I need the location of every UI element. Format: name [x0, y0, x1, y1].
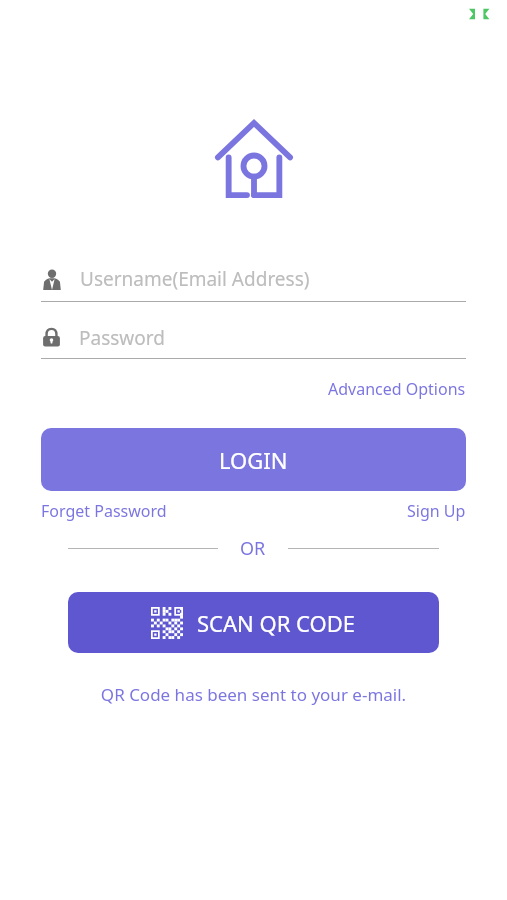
- button[interactable]: Forget Password: [41, 500, 167, 522]
- button[interactable]: Sign Up: [407, 500, 466, 522]
- staticText: Forget Password: [41, 500, 167, 522]
- staticText: LOGIN: [219, 445, 288, 475]
- staticText: Password: [79, 325, 165, 351]
- button[interactable]: Advanced Options: [320, 359, 466, 406]
- staticText: Sign Up: [407, 500, 466, 522]
- button[interactable]: LOGIN: [41, 428, 466, 491]
- button[interactable]: SCAN QR CODE: [68, 592, 439, 653]
- staticText: QR Code has been sent to your e-mail.: [0, 683, 507, 706]
- button[interactable]: Password: [41, 317, 466, 358]
- staticText: SCAN QR CODE: [197, 608, 356, 638]
- staticText: Advanced Options: [328, 378, 466, 400]
- other: Data transfer: [466, 3, 496, 25]
- staticText: OR: [240, 536, 266, 561]
- staticText: Username(Email Address): [80, 266, 310, 292]
- button[interactable]: Username(Email Address): [41, 256, 466, 301]
